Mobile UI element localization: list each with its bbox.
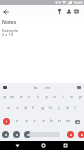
button[interactable]: w [8, 92, 16, 102]
button[interactable]: s [13, 103, 21, 113]
staticText: Notes [2, 19, 17, 26]
button[interactable]: Home [39, 141, 48, 150]
button[interactable]: i [59, 92, 67, 102]
staticText: n [58, 118, 61, 124]
button[interactable]: Back [13, 141, 22, 150]
staticText: t [37, 94, 39, 100]
button[interactable]: y [42, 92, 50, 102]
button[interactable]: r [25, 92, 33, 102]
button[interactable]: u [50, 92, 58, 102]
staticText: x [25, 118, 28, 124]
staticText: e [20, 94, 23, 100]
staticText: f [32, 105, 34, 111]
staticText: me [45, 85, 51, 90]
button[interactable]: n [55, 116, 63, 126]
button[interactable]: t [34, 92, 42, 102]
button[interactable]: j [55, 103, 63, 113]
button[interactable]: Back [0, 6, 11, 17]
button[interactable]: to [34, 85, 38, 90]
staticText: b [50, 118, 53, 124]
staticText: q [3, 94, 6, 100]
staticText: y [45, 94, 48, 100]
button[interactable]: d [21, 103, 29, 113]
staticText: k [66, 105, 69, 111]
staticText: p [79, 94, 82, 100]
button[interactable]: f [29, 103, 37, 113]
button[interactable]: o [67, 92, 75, 102]
staticText: Example [2, 28, 19, 33]
button[interactable]: Shift [1, 116, 12, 127]
staticText: m [66, 118, 70, 124]
button[interactable]: Space [29, 129, 60, 140]
staticText: o [70, 94, 73, 100]
button[interactable]: g [38, 103, 46, 113]
button[interactable]: c [30, 116, 38, 126]
button[interactable]: Pin [54, 6, 65, 17]
button[interactable]: Emoji [11, 129, 22, 140]
button[interactable]: m [64, 116, 72, 126]
button[interactable]: z [13, 116, 21, 126]
button[interactable]: Add person [63, 6, 74, 17]
button[interactable]: Clipboard [0, 83, 9, 92]
button[interactable]: l [71, 103, 79, 113]
button[interactable]: Recents [61, 141, 70, 150]
staticText: l [74, 105, 76, 111]
staticText: d [24, 105, 27, 111]
staticText: z [16, 118, 18, 124]
staticText: r [28, 94, 30, 100]
button[interactable]: q [0, 92, 8, 102]
button[interactable]: x [22, 116, 30, 126]
button[interactable]: Symbols [0, 129, 11, 140]
button[interactable]: p [76, 92, 84, 102]
button[interactable]: v [39, 116, 47, 126]
staticText: 10:45 [73, 0, 83, 5]
staticText: w [10, 94, 14, 100]
staticText: c [33, 118, 36, 124]
button[interactable]: Period [65, 129, 76, 140]
staticText: i [62, 94, 64, 100]
staticText: u [53, 94, 56, 100]
button[interactable]: Enter [76, 129, 84, 140]
button[interactable]: k [63, 103, 71, 113]
button[interactable]: Archive [71, 6, 82, 17]
button[interactable]: e [17, 92, 25, 102]
button[interactable]: a [4, 103, 12, 113]
button[interactable]: b [47, 116, 55, 126]
button[interactable]: Backspace [72, 116, 83, 127]
button[interactable]: Keyboard settings [74, 83, 83, 92]
staticText: a [7, 105, 10, 111]
staticText: h [49, 105, 52, 111]
staticText: v [42, 118, 45, 124]
button[interactable]: Language [22, 129, 33, 140]
staticText: j [58, 105, 60, 111]
staticText: 2 x 10 [2, 32, 14, 37]
staticText: to [34, 85, 38, 90]
button[interactable]: h [46, 103, 54, 113]
button[interactable]: me [45, 85, 51, 90]
staticText: g [41, 105, 44, 111]
staticText: s [16, 105, 19, 111]
